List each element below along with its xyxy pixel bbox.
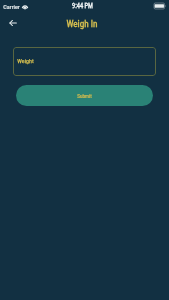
button[interactable]: Back xyxy=(3,13,23,33)
button[interactable]: Weight xyxy=(13,47,156,76)
staticText: Submit xyxy=(77,93,92,99)
button[interactable]: Submit xyxy=(16,85,153,106)
staticText: Weigh In xyxy=(66,18,98,29)
staticText: Weight xyxy=(17,57,34,64)
staticText: 9:44 PM xyxy=(72,2,93,10)
staticText: Carrier xyxy=(3,3,20,10)
